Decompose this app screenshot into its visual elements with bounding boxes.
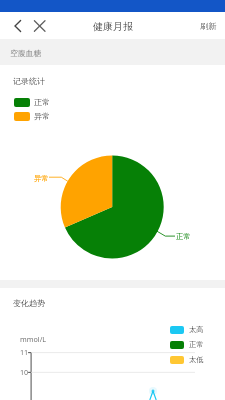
staticText: 太低 (189, 355, 204, 364)
staticText: 异常 (34, 111, 50, 121)
staticText: 太高 (189, 325, 204, 334)
staticText: 刷新 (200, 21, 217, 31)
staticText: 10 (20, 367, 29, 377)
button[interactable]: 刷新 (192, 16, 225, 36)
button[interactable]: 记录统计 (0, 65, 225, 280)
staticText: 健康月报 (93, 20, 133, 33)
staticText: 空腹血糖 (10, 48, 42, 58)
button[interactable]: 变化趋势 (0, 288, 225, 400)
staticText: 异常 (34, 174, 49, 183)
staticText: 正常 (176, 232, 191, 241)
button[interactable]: Close (30, 18, 48, 36)
button[interactable]: Back (9, 18, 27, 36)
staticText: 正常 (189, 340, 204, 349)
staticText: mmol/L (20, 334, 47, 344)
staticText: 11 (20, 347, 29, 357)
staticText: 记录统计 (13, 76, 45, 86)
staticText: 变化趋势 (13, 298, 45, 308)
staticText: 正常 (34, 97, 50, 107)
